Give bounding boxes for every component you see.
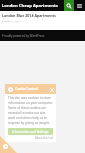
button[interactable]: Close xyxy=(49,87,54,92)
staticText: Information and Settings xyxy=(12,130,49,134)
staticText: London Blue 2014 Apartments xyxy=(2,13,56,18)
staticText: Some of these cookies are essential to m… xyxy=(8,106,53,125)
button[interactable]: Information and Settings xyxy=(8,128,53,135)
staticText: Proudly powered by WordPress xyxy=(2,34,45,38)
staticText: Cookie Control xyxy=(15,87,38,91)
button[interactable]: About this tool xyxy=(8,136,53,140)
staticText: This site uses cookies to store informat… xyxy=(8,96,53,105)
staticText: London Cheap Apartments xyxy=(2,3,58,9)
staticText: October 7, 2014 xyxy=(2,19,21,22)
button[interactable]: Search xyxy=(64,0,74,11)
button[interactable]: Cookie settings xyxy=(0,136,17,153)
button[interactable]: Menu xyxy=(74,0,85,11)
